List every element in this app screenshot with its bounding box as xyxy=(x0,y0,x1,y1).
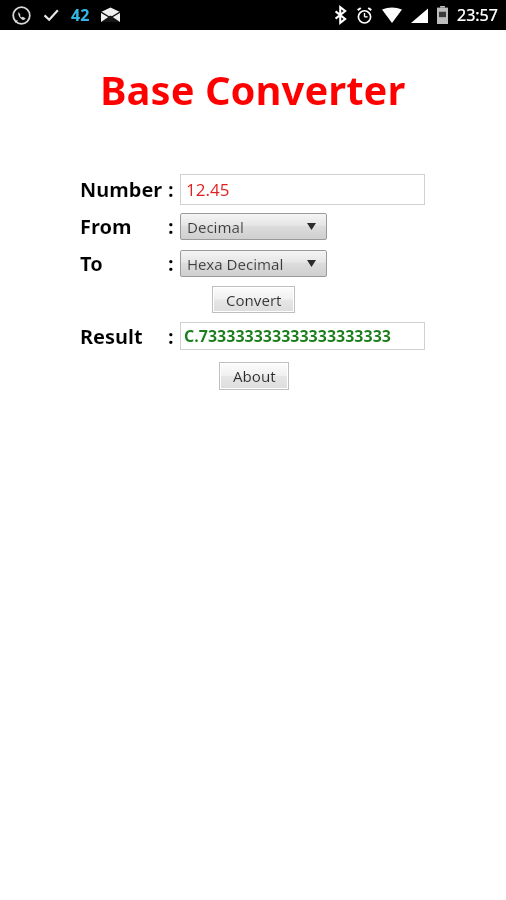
staticText: : xyxy=(168,176,174,203)
staticText: Decimal xyxy=(187,217,244,237)
staticText: Convert xyxy=(226,290,282,310)
button[interactable]: C.733333333333333333333 xyxy=(180,322,425,350)
staticText: Number xyxy=(80,176,163,203)
staticText: : xyxy=(168,250,174,277)
button[interactable]: Decimal xyxy=(180,213,327,240)
staticText: About xyxy=(233,366,276,386)
button[interactable]: 12.45 xyxy=(180,174,425,205)
button[interactable]: Convert xyxy=(213,287,294,312)
staticText: 42 xyxy=(71,4,90,26)
staticText: : xyxy=(168,323,174,350)
button[interactable]: About xyxy=(220,363,288,389)
staticText: Base Converter xyxy=(100,62,406,116)
staticText: From xyxy=(80,213,132,240)
staticText: Hexa Decimal xyxy=(187,254,284,274)
staticText: : xyxy=(168,213,174,240)
staticText: Result xyxy=(80,323,143,350)
staticText: 12.45 xyxy=(186,178,230,201)
staticText: C.733333333333333333333 xyxy=(184,325,391,347)
button[interactable]: Hexa Decimal xyxy=(180,250,327,277)
staticText: To xyxy=(80,250,103,277)
staticText: 23:57 xyxy=(457,4,498,26)
